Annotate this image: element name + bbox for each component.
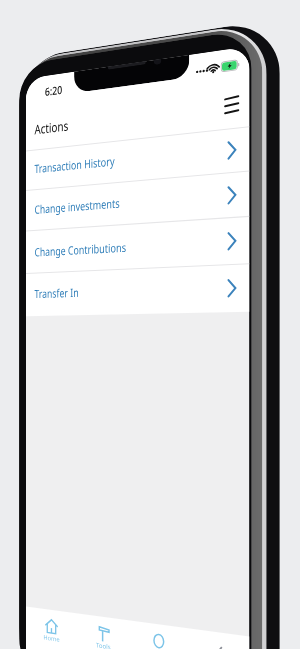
button[interactable]: Transfer In — [26, 264, 249, 315]
staticText: 6:20 — [45, 82, 62, 100]
staticText: Transaction History — [34, 153, 115, 176]
staticText: Change Contributions — [34, 239, 126, 259]
staticText: Transfer In — [34, 284, 79, 301]
button[interactable]: Menu — [223, 91, 242, 117]
staticText: Home — [43, 633, 60, 644]
button[interactable]: More — [188, 637, 249, 649]
staticText: Tools — [96, 640, 111, 649]
button[interactable]: Transaction History — [26, 126, 249, 191]
button[interactable]: Tools — [77, 622, 130, 649]
button[interactable]: Change Contributions — [26, 217, 249, 274]
button[interactable]: Home — [26, 615, 77, 646]
staticText: Actions — [34, 117, 69, 138]
button[interactable]: Save — [130, 629, 188, 649]
button[interactable]: Change investments — [26, 170, 249, 231]
staticText: Change investments — [34, 195, 120, 217]
